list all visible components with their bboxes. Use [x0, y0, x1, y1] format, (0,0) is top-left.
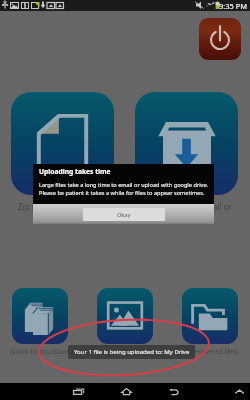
button[interactable]: Home: [114, 383, 138, 400]
button[interactable]: Expand: [227, 383, 250, 400]
button[interactable]: Quick Instructions: [12, 288, 68, 344]
staticText: Em: [196, 201, 208, 212]
staticText: Zip Files to Email: [18, 201, 81, 212]
button[interactable]: Recents: [66, 383, 90, 400]
staticText: Your 1 file is being uploaded to: My Dri…: [74, 348, 190, 356]
staticText: Uploading takes time: [39, 167, 111, 176]
staticText: Quick Instructions: [10, 347, 70, 357]
button[interactable]: Photos: [97, 288, 153, 344]
button[interactable]: Back: [161, 383, 185, 400]
staticText: Photos: [97, 347, 153, 357]
button[interactable]: Recovered Media: [182, 288, 238, 344]
button[interactable]: Zip Files: [11, 92, 114, 195]
button[interactable]: Email or upload: [135, 92, 238, 195]
staticText: 9:35 PM: [219, 1, 248, 11]
button[interactable]: Okay: [83, 208, 165, 221]
staticText: Recovered Media: [190, 347, 239, 356]
button[interactable]: Power: [199, 18, 241, 60]
staticText: Large files take a long time to email or…: [39, 181, 208, 197]
staticText: ail or: [213, 201, 232, 212]
staticText: Okay: [117, 211, 131, 219]
